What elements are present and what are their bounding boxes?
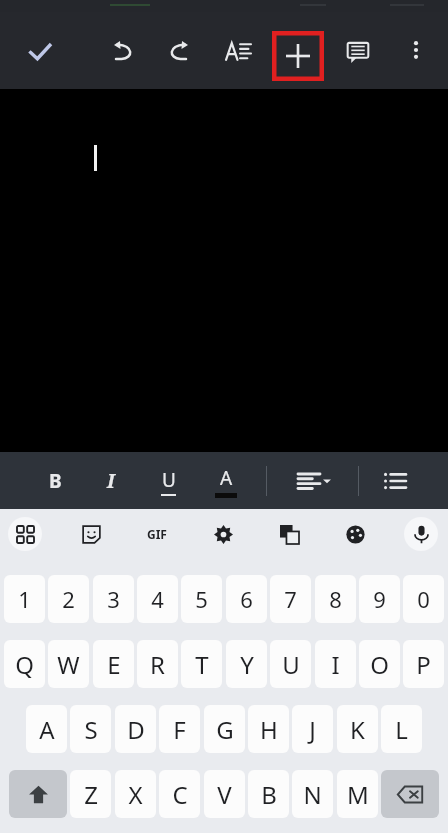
button[interactable]: 4 [137, 575, 178, 623]
button[interactable]: Done [14, 26, 66, 78]
button[interactable]: Text formatting [214, 28, 262, 76]
button[interactable]: W [48, 640, 89, 688]
button[interactable]: J [292, 705, 333, 753]
button[interactable]: Bulleted list [372, 458, 418, 504]
staticText: 1 [18, 584, 31, 614]
button[interactable]: K [337, 705, 378, 753]
staticText: K [350, 713, 365, 746]
staticText: 4 [151, 584, 164, 614]
staticText: E [107, 648, 121, 681]
button[interactable]: Comments [334, 28, 382, 76]
button[interactable]: B [32, 458, 78, 504]
button[interactable]: Backspace [381, 770, 439, 818]
button[interactable]: T [181, 640, 222, 688]
button[interactable]: M [337, 770, 378, 818]
button[interactable]: 7 [270, 575, 311, 623]
button[interactable]: 5 [181, 575, 222, 623]
button[interactable]: X [115, 770, 156, 818]
staticText: J [309, 713, 316, 746]
button[interactable]: B [248, 770, 289, 818]
staticText: 7 [284, 584, 297, 614]
button[interactable]: Settings [206, 517, 240, 551]
button[interactable]: A [26, 705, 67, 753]
staticText: C [172, 778, 188, 811]
button[interactable]: 0 [403, 575, 444, 623]
staticText: B [261, 778, 277, 811]
button[interactable]: F [159, 705, 200, 753]
staticText: 6 [240, 584, 253, 614]
button[interactable]: S [70, 705, 111, 753]
button[interactable]: Redo [155, 28, 203, 76]
button[interactable]: Insert [272, 31, 324, 81]
staticText: 2 [62, 584, 75, 614]
staticText: F [173, 713, 186, 746]
staticText: D [127, 713, 145, 746]
button[interactable]: Z [70, 770, 111, 818]
staticText: U [162, 467, 176, 493]
button[interactable]: G [204, 705, 245, 753]
button[interactable]: Voice input [404, 517, 438, 551]
button[interactable]: Text color [203, 458, 249, 504]
staticText: 8 [329, 584, 342, 614]
button[interactable]: I [88, 458, 134, 504]
staticText: N [303, 778, 322, 811]
button[interactable]: 8 [315, 575, 356, 623]
button[interactable]: L [381, 705, 422, 753]
button[interactable]: C [159, 770, 200, 818]
button[interactable]: GIF [140, 517, 174, 551]
button[interactable]: 1 [4, 575, 45, 623]
staticText: H [260, 713, 278, 746]
button[interactable]: More options [394, 28, 438, 72]
button[interactable]: I [315, 640, 356, 688]
staticText: Z [84, 778, 98, 811]
staticText: T [195, 648, 209, 681]
button[interactable]: E [93, 640, 134, 688]
button[interactable]: U [270, 640, 311, 688]
button[interactable]: N [292, 770, 333, 818]
staticText: R [150, 648, 165, 681]
staticText: A [220, 465, 233, 491]
staticText: 5 [195, 584, 208, 614]
button[interactable]: V [204, 770, 245, 818]
staticText: B [49, 468, 62, 494]
staticText: M [347, 778, 369, 811]
button[interactable]: 6 [226, 575, 267, 623]
button[interactable]: Stickers [74, 517, 108, 551]
button[interactable]: Y [226, 640, 267, 688]
button[interactable]: H [248, 705, 289, 753]
button[interactable]: 2 [48, 575, 89, 623]
staticText: G [216, 713, 234, 746]
staticText: W [57, 648, 80, 681]
button[interactable]: Shift [9, 770, 67, 818]
staticText: O [370, 648, 389, 681]
staticText: U [282, 648, 300, 681]
staticText: P [416, 648, 431, 681]
staticText: Q [15, 648, 34, 681]
button[interactable]: R [137, 640, 178, 688]
button[interactable]: Translate [272, 517, 306, 551]
staticText: L [395, 713, 408, 746]
button[interactable]: O [359, 640, 400, 688]
staticText: S [84, 713, 98, 746]
staticText: V [217, 778, 232, 811]
button[interactable]: Undo [98, 28, 146, 76]
button[interactable]: 9 [359, 575, 400, 623]
staticText: GIF [147, 526, 167, 542]
staticText: A [39, 713, 55, 746]
staticText: I [107, 468, 115, 494]
button[interactable]: P [403, 640, 444, 688]
button[interactable]: 3 [93, 575, 134, 623]
button[interactable]: U [145, 458, 191, 504]
staticText: X [128, 778, 143, 811]
button[interactable]: Apps [8, 517, 42, 551]
staticText: I [331, 648, 340, 681]
staticText: 0 [417, 584, 430, 614]
button[interactable]: Q [4, 640, 45, 688]
button[interactable]: Theme [338, 517, 372, 551]
button[interactable]: Alignment [282, 458, 346, 504]
staticText: 9 [373, 584, 386, 614]
staticText: Y [240, 648, 254, 681]
button[interactable]: D [115, 705, 156, 753]
staticText: 3 [107, 584, 120, 614]
